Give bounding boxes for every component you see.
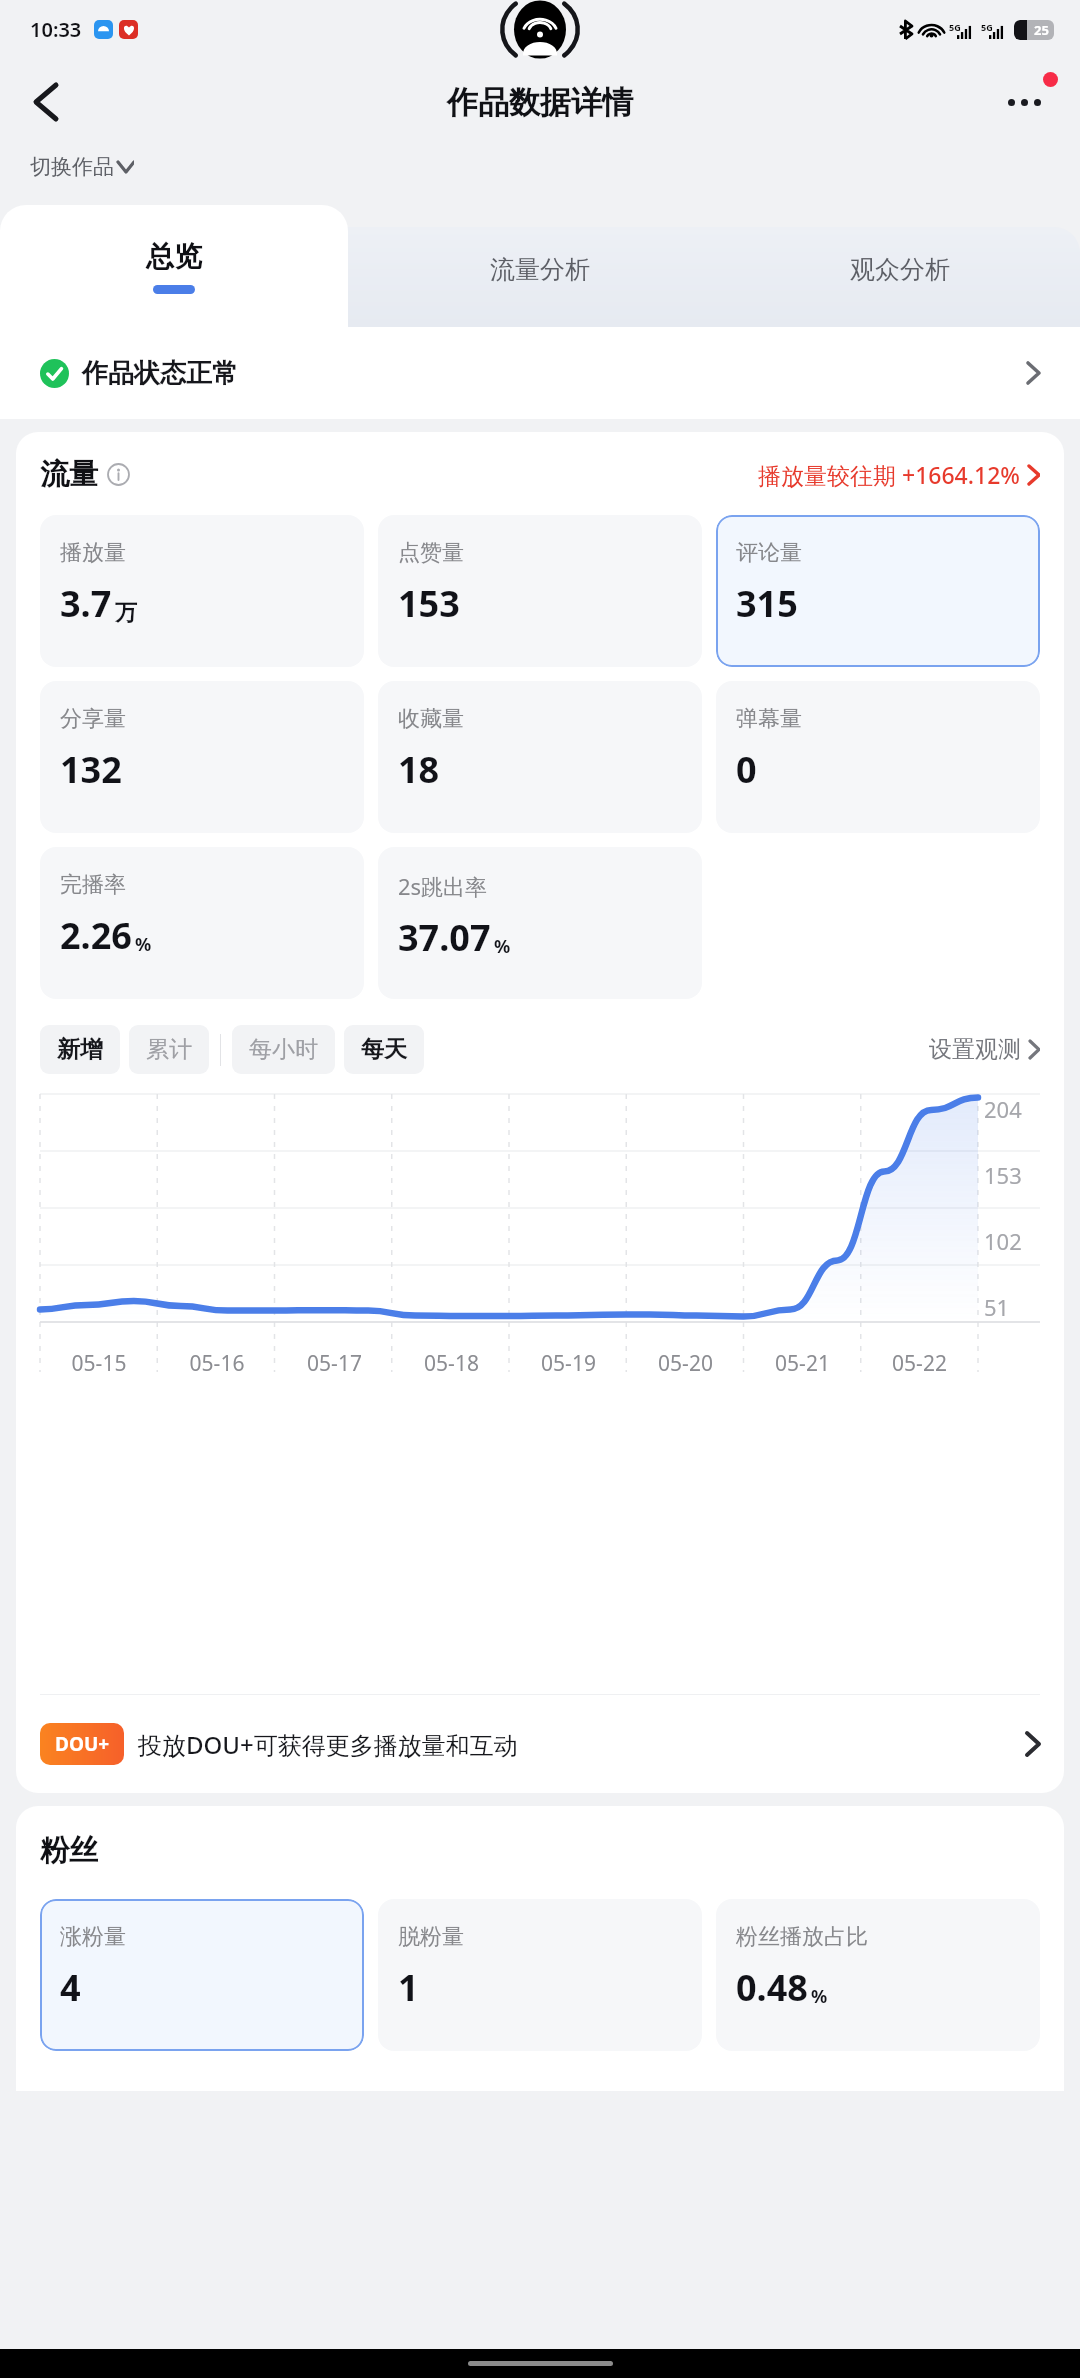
staticText: % <box>135 932 152 957</box>
button[interactable]: More options <box>988 66 1060 138</box>
staticText: 弹幕量 <box>736 705 802 733</box>
button[interactable]: 作品状态正常 <box>0 327 1080 419</box>
staticText: 153 <box>984 1160 1022 1190</box>
button[interactable]: 流量分析 <box>360 227 720 327</box>
staticText: 10:33 <box>30 16 82 43</box>
staticText: DOU+ <box>55 1731 110 1757</box>
button[interactable]: 播放量 <box>40 515 364 667</box>
button[interactable]: Back <box>14 70 78 134</box>
staticText: 51 <box>984 1292 1010 1322</box>
staticText: 3.7 <box>60 579 112 628</box>
staticText: 观众分析 <box>850 254 950 285</box>
staticText: 切换作品 <box>30 154 114 180</box>
staticText: 05-19 <box>510 1349 627 1378</box>
staticText: 累计 <box>146 1035 192 1064</box>
staticText: 05-17 <box>276 1349 393 1378</box>
staticText: 1 <box>398 1963 419 2012</box>
button[interactable]: 完播率 <box>40 847 364 999</box>
button[interactable]: 分享量 <box>40 681 364 833</box>
staticText: % <box>494 934 511 959</box>
button[interactable]: 新增 <box>40 1025 120 1074</box>
staticText: 18 <box>398 745 440 794</box>
staticText: 粉丝播放占比 <box>736 1923 868 1951</box>
staticText: 作品状态正常 <box>82 357 238 390</box>
staticText: 播放量较往期 +1664.12% <box>758 459 1020 490</box>
staticText: 153 <box>398 579 460 628</box>
staticText: 作品数据详情 <box>447 83 633 122</box>
staticText: 流量分析 <box>490 254 590 285</box>
staticText: 0 <box>736 745 757 794</box>
button[interactable]: 粉丝播放占比 <box>716 1899 1040 2051</box>
staticText: % <box>811 1984 828 2009</box>
staticText: 05-16 <box>158 1349 276 1378</box>
button[interactable]: DOU+ <box>40 1695 1040 1793</box>
staticText: 涨粉量 <box>60 1923 126 1951</box>
staticText: 完播率 <box>60 871 126 899</box>
button[interactable]: 每小时 <box>232 1025 335 1074</box>
button[interactable]: 脱粉量 <box>378 1899 702 2051</box>
staticText: 新增 <box>57 1035 103 1064</box>
button[interactable]: 观众分析 <box>720 227 1080 327</box>
staticText: 投放DOU+可获得更多播放量和互动 <box>138 1728 518 1761</box>
button[interactable]: 评论量 <box>716 515 1040 667</box>
staticText: 2s跳出率 <box>398 871 488 901</box>
button[interactable]: 点赞量 <box>378 515 702 667</box>
staticText: 4 <box>60 1963 81 2012</box>
staticText: 收藏量 <box>398 705 464 733</box>
staticText: 05-21 <box>744 1349 861 1378</box>
staticText: 每天 <box>361 1035 407 1064</box>
staticText: 37.07 <box>398 913 491 962</box>
button[interactable]: 切换作品 <box>30 145 134 189</box>
button[interactable]: 每天 <box>344 1025 424 1074</box>
staticText: 评论量 <box>736 539 802 567</box>
button[interactable]: 收藏量 <box>378 681 702 833</box>
button[interactable]: 弹幕量 <box>716 681 1040 833</box>
staticText: 5G <box>949 21 961 33</box>
staticText: 05-18 <box>393 1349 510 1378</box>
staticText: 总览 <box>146 239 202 274</box>
staticText: 脱粉量 <box>398 1923 464 1951</box>
staticText: 5G <box>981 21 993 33</box>
button[interactable]: Info <box>107 463 130 486</box>
staticText: 分享量 <box>60 705 126 733</box>
staticText: 102 <box>984 1226 1022 1256</box>
button[interactable]: 设置观测 <box>929 1035 1040 1064</box>
button[interactable]: 累计 <box>129 1025 209 1074</box>
staticText: 0.48 <box>736 1963 808 2012</box>
staticText: 315 <box>736 579 798 628</box>
button[interactable]: 总览 <box>0 205 348 327</box>
button[interactable]: 播放量较往期 +1664.12% <box>758 459 1040 490</box>
button[interactable]: 涨粉量 <box>40 1899 364 2051</box>
staticText: 粉丝 <box>40 1832 98 1869</box>
staticText: 05-15 <box>40 1349 158 1378</box>
staticText: 万 <box>115 599 137 627</box>
staticText: 05-22 <box>861 1349 978 1378</box>
staticText: 点赞量 <box>398 539 464 567</box>
staticText: 2.26 <box>60 911 132 960</box>
staticText: 25 <box>1034 21 1049 39</box>
staticText: 204 <box>984 1094 1022 1124</box>
staticText: 设置观测 <box>929 1035 1021 1064</box>
staticText: 每小时 <box>249 1035 318 1064</box>
staticText: 132 <box>60 745 122 794</box>
staticText: 播放量 <box>60 539 126 567</box>
staticText: 流量 <box>40 456 98 493</box>
staticText: 05-20 <box>627 1349 744 1378</box>
button[interactable]: 2s跳出率 <box>378 847 702 999</box>
